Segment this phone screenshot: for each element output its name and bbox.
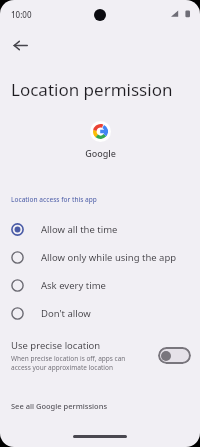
staticText: See all Google permissions (11, 401, 108, 411)
staticText: Google (85, 147, 116, 159)
staticText: Ask every time (41, 279, 106, 292)
staticText: Allow only while using the app (41, 251, 177, 264)
staticText: 10:00 (11, 9, 32, 20)
staticText: When precise location is off, apps can a… (11, 354, 126, 372)
button[interactable]: Allow all the time (0, 215, 200, 243)
staticText: Don't allow (41, 307, 91, 320)
button[interactable]: Use precise location (0, 335, 200, 376)
button[interactable]: See all Google permissions (0, 398, 119, 414)
button[interactable]: Ask every time (0, 271, 200, 299)
button[interactable]: Allow only while using the app (0, 243, 200, 271)
button[interactable]: Use precise location toggle (158, 347, 191, 364)
staticText: Location permission (11, 78, 173, 101)
staticText: Use precise location (11, 339, 101, 352)
button[interactable]: Don't allow (0, 299, 200, 327)
staticText: Location access for this app (11, 195, 97, 204)
staticText: Allow all the time (41, 223, 118, 236)
button[interactable]: Back (5, 30, 35, 60)
